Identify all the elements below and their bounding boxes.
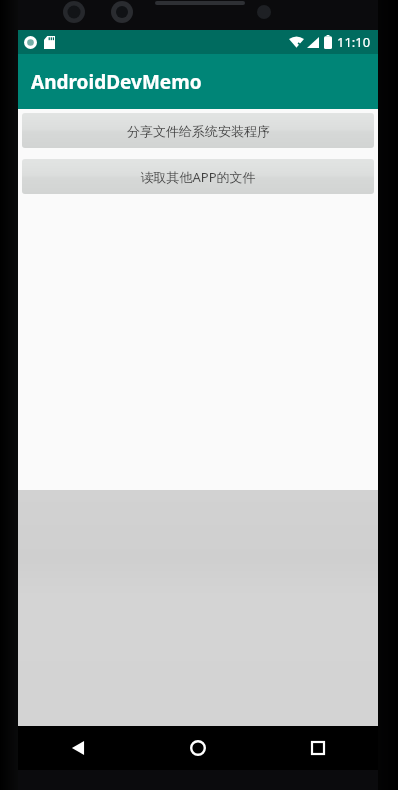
staticText: 读取其他APP的文件	[140, 168, 256, 186]
staticText: 分享文件给系统安装程序	[127, 123, 270, 139]
button[interactable]: Recents	[258, 726, 378, 770]
staticText: AndroidDevMemo	[31, 69, 202, 95]
button[interactable]: 读取其他APP的文件	[22, 159, 374, 194]
button[interactable]: 分享文件给系统安装程序	[22, 113, 374, 148]
button[interactable]: Back	[18, 726, 138, 770]
staticText: 11:10	[337, 33, 371, 51]
button[interactable]: Home	[138, 726, 258, 770]
